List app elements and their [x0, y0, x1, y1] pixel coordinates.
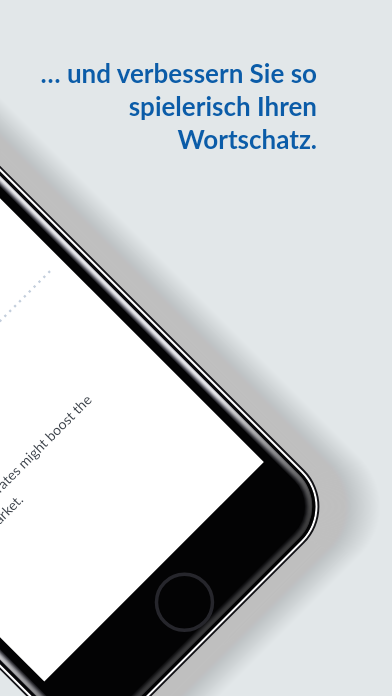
- staticText: … und verbessern Sie so spielerisch Ihre…: [20, 57, 317, 155]
